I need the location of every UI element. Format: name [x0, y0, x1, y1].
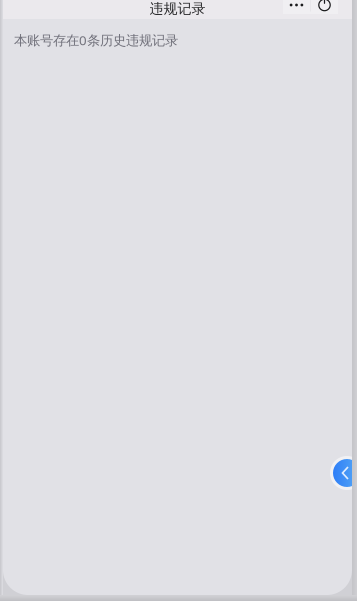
button[interactable]: More — [283, 0, 310, 14]
button[interactable]: Back — [330, 456, 357, 490]
staticText: 本账号存在0条历史违规记录 — [14, 31, 178, 49]
button[interactable]: Close — [311, 0, 338, 14]
staticText: 违规记录 — [149, 0, 205, 18]
